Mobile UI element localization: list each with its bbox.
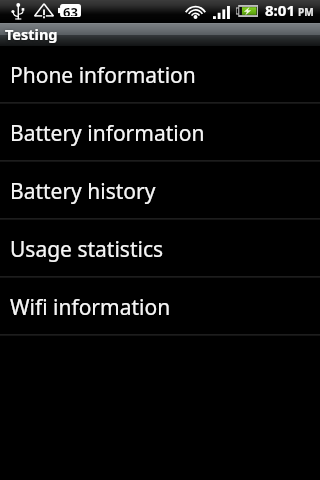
button[interactable]: Phone information bbox=[0, 46, 320, 104]
staticText: Wifi information bbox=[10, 293, 171, 322]
button[interactable]: Battery information bbox=[0, 104, 320, 162]
staticText: Battery information bbox=[10, 119, 205, 148]
staticText: 63 bbox=[63, 3, 78, 16]
staticText: Battery history bbox=[10, 177, 156, 206]
button[interactable]: Battery history bbox=[0, 162, 320, 220]
other: Signal strength bbox=[213, 6, 230, 19]
staticText: Testing bbox=[5, 24, 58, 44]
button[interactable]: Wifi information bbox=[0, 278, 320, 336]
other: Battery charging bbox=[236, 5, 258, 17]
other: Wi-Fi bbox=[185, 4, 206, 18]
other: Warning bbox=[34, 3, 54, 18]
staticText: PM bbox=[298, 5, 314, 19]
staticText: 8:01 bbox=[265, 0, 295, 19]
staticText: Phone information bbox=[10, 61, 196, 90]
staticText: Usage statistics bbox=[10, 235, 164, 264]
button[interactable]: Usage statistics bbox=[0, 220, 320, 278]
other: USB connected bbox=[11, 3, 25, 20]
